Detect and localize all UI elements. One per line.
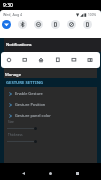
button[interactable]: Do not disturb [34,20,43,29]
staticText: GESTURE SETTING [6,80,44,86]
button[interactable]: Home [44,167,57,180]
button[interactable]: Drive [38,57,44,63]
staticText: Gesture panel color [15,113,51,118]
button[interactable]: Settings [6,57,12,63]
button[interactable]: Back [17,167,30,180]
button[interactable]: Thickness slider [6,139,38,143]
staticText: Size [8,120,14,124]
button[interactable]: Files [55,57,61,63]
button[interactable]: Messages [22,57,28,63]
button[interactable]: Chat [71,57,77,63]
button[interactable]: Auto rotate [67,20,76,29]
button[interactable]: Gesture Position [0,99,101,110]
staticText: Notifications [6,42,32,48]
staticText: 9:30 [3,2,13,9]
button[interactable]: Wi-Fi [2,20,11,29]
button[interactable]: Size slider [6,126,38,130]
button[interactable]: News [87,57,93,63]
staticText: Gesture Position [15,102,46,107]
staticText: Manage [5,72,22,78]
button[interactable]: Bluetooth [18,20,27,29]
button[interactable]: Flashlight [51,20,60,29]
button[interactable]: Recent apps [71,167,84,180]
staticText: Wed, Aug 4 [3,12,23,17]
staticText: Thickness [8,133,23,137]
button[interactable]: Battery saver [83,20,92,29]
staticText: 100% [88,13,97,17]
staticText: Enable Gesture [15,91,43,96]
button[interactable]: Enable Gesture [0,88,101,99]
button[interactable]: Gesture panel color [0,110,101,121]
